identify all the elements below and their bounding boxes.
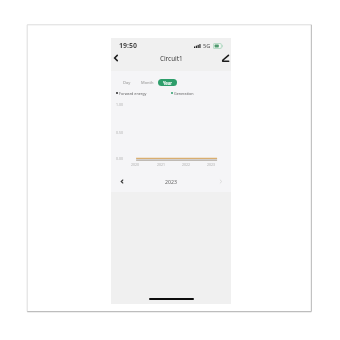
- staticText: 1.00: [116, 102, 123, 107]
- staticText: Month: [141, 80, 154, 85]
- staticText: 0.00: [116, 156, 123, 161]
- staticText: Circuit1: [160, 54, 183, 62]
- staticText: Day: [123, 80, 131, 85]
- staticText: 2020: [131, 162, 140, 167]
- button[interactable]: Back: [109, 51, 123, 65]
- button[interactable]: Year: [158, 79, 177, 86]
- staticText: 2022: [182, 162, 191, 167]
- staticText: Year: [163, 80, 173, 86]
- staticText: 5G: [203, 42, 211, 50]
- staticText: Generation: [174, 91, 194, 96]
- staticText: 19:50: [119, 41, 137, 51]
- staticText: Forward energy: [119, 91, 147, 96]
- staticText: 2023: [126, 178, 216, 185]
- button[interactable]: Month: [139, 79, 156, 86]
- button[interactable]: Next year: [216, 177, 225, 186]
- button[interactable]: Edit: [218, 51, 232, 65]
- button[interactable]: Day: [121, 79, 133, 86]
- staticText: 0.50: [116, 130, 123, 135]
- staticText: 2021: [157, 162, 166, 167]
- button[interactable]: Previous year: [117, 177, 126, 186]
- staticText: 2023: [207, 162, 216, 167]
